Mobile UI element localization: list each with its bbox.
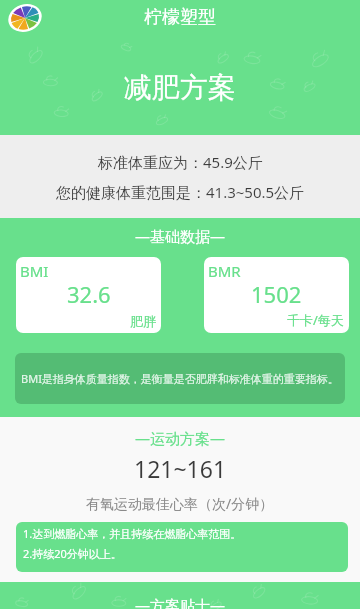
staticText: —基础数据—: [135, 226, 226, 246]
staticText: 标准体重应为：45.9公斤: [98, 152, 263, 172]
staticText: BMR: [208, 261, 241, 281]
staticText: 121~161: [134, 453, 227, 484]
staticText: 1502: [251, 279, 302, 309]
staticText: 千卡/每天: [287, 311, 344, 329]
staticText: 柠檬塑型: [144, 6, 216, 29]
button[interactable]: BMI是指身体质量指数，是衡量是否肥胖和标准体重的重要指标。: [15, 353, 345, 404]
staticText: BMI: [20, 261, 49, 281]
button[interactable]: BMR: [204, 257, 349, 333]
staticText: 肥胖: [130, 313, 156, 329]
staticText: 1.达到燃脂心率，并且持续在燃脂心率范围。: [23, 526, 242, 541]
staticText: BMI是指身体质量指数，是衡量是否肥胖和标准体重的重要指标。: [21, 371, 339, 386]
button[interactable]: Logo: [8, 1, 42, 35]
staticText: 32.6: [67, 279, 111, 309]
button[interactable]: 1.达到燃脂心率，并且持续在燃脂心率范围。: [16, 522, 348, 572]
button[interactable]: BMI: [16, 257, 161, 333]
staticText: 2.持续20分钟以上。: [23, 546, 122, 561]
staticText: —方案贴士—: [135, 595, 226, 609]
staticText: —运动方案—: [135, 428, 226, 448]
staticText: 您的健康体重范围是：41.3~50.5公斤: [56, 182, 305, 202]
staticText: 减肥方案: [124, 70, 236, 105]
staticText: 有氧运动最佳心率（次/分钟）: [86, 494, 274, 513]
